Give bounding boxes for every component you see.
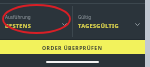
staticText: TAGESGÜLTIG [78,22,119,30]
button[interactable]: Gültig [73,4,145,39]
staticText: Ausführung [5,14,31,20]
staticText: Gültig [78,14,92,20]
button[interactable]: Ausführung [0,4,72,39]
button[interactable]: ORDER ÜBERPRÜFEN [0,40,145,54]
other: Auswahl öffnen [61,21,68,28]
staticText: BESTENS [5,22,32,30]
other: Auswahl öffnen [134,21,141,28]
staticText: ORDER ÜBERPRÜFEN [42,44,103,51]
